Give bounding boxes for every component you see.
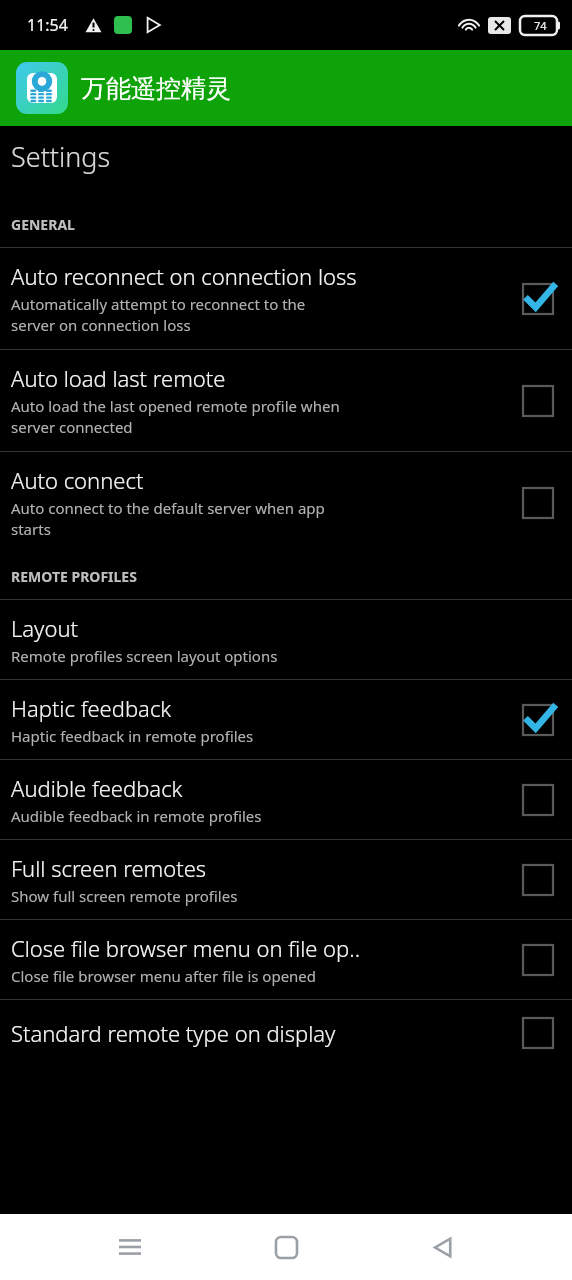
staticText: Audible feedback [11, 773, 183, 803]
button[interactable]: Unchecked: Auto connect [518, 483, 558, 523]
staticText: Auto connect [11, 465, 144, 495]
staticText: Close file browser menu after file is op… [11, 966, 317, 986]
staticText: Show full screen remote profiles [11, 886, 238, 906]
staticText: Audible feedback in remote profiles [11, 806, 262, 826]
button[interactable]: Auto connect [0, 452, 572, 553]
button[interactable]: Home [259, 1220, 313, 1274]
button[interactable]: Auto reconnect on connection loss [0, 248, 572, 349]
staticText: Haptic feedback in remote profiles [11, 726, 254, 746]
button[interactable]: Standard remote type on display [0, 1000, 572, 1066]
staticText: REMOTE PROFILES [11, 567, 137, 586]
button[interactable]: Layout [0, 600, 572, 679]
button[interactable]: Unchecked: Audible feedback [518, 780, 558, 820]
button[interactable]: Checked: Auto reconnect on connection lo… [518, 279, 558, 319]
staticText: Auto load the last opened remote profile… [11, 396, 340, 438]
staticText: Auto load last remote [11, 363, 226, 393]
staticText: Haptic feedback [11, 693, 172, 723]
button[interactable]: Checked: Haptic feedback [518, 700, 558, 740]
button[interactable]: Unchecked: Auto load last remote [518, 381, 558, 421]
staticText: Automatically attempt to reconnect to th… [11, 294, 306, 336]
button[interactable]: Full screen remotes [0, 840, 572, 919]
staticText: Full screen remotes [11, 853, 207, 883]
staticText: 11:54 [27, 14, 68, 36]
staticText: Auto connect to the default server when … [11, 498, 325, 540]
staticText: Layout [11, 613, 78, 643]
staticText: 万能遥控精灵 [81, 73, 231, 104]
button[interactable]: Back [416, 1220, 470, 1274]
button[interactable]: Auto load last remote [0, 350, 572, 451]
staticText: GENERAL [11, 215, 75, 234]
button[interactable]: Unchecked: Standard remote type on displ… [518, 1013, 558, 1053]
button[interactable]: Close file browser menu on file op.. [0, 920, 572, 999]
staticText: 74 [534, 18, 547, 33]
button[interactable]: Unchecked: Close file browser menu on fi… [518, 940, 558, 980]
button[interactable]: Haptic feedback [0, 680, 572, 759]
button[interactable]: Audible feedback [0, 760, 572, 839]
staticText: Settings [11, 138, 111, 175]
staticText: Standard remote type on display [11, 1018, 336, 1048]
staticText: Auto reconnect on connection loss [11, 261, 357, 291]
button[interactable]: Recent apps [103, 1220, 157, 1274]
button[interactable]: Unchecked: Full screen remotes [518, 860, 558, 900]
staticText: Remote profiles screen layout options [11, 646, 278, 666]
staticText: Close file browser menu on file op.. [11, 933, 361, 963]
